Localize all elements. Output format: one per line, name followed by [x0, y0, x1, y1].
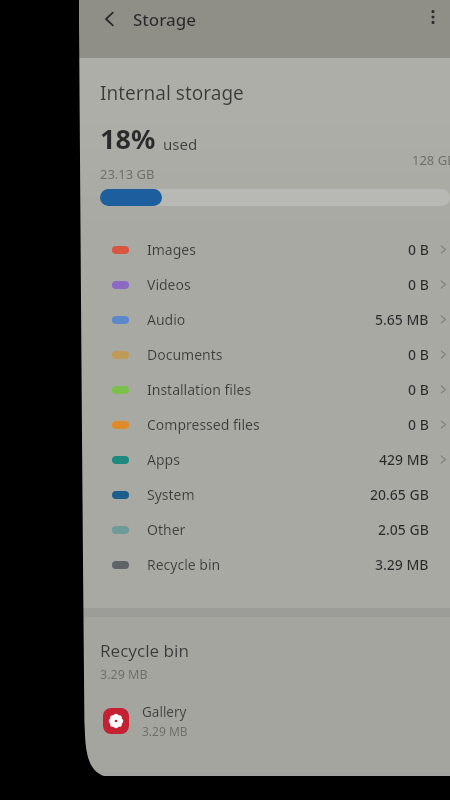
- staticText: 3.29 MB: [100, 666, 148, 683]
- button[interactable]: Recent apps: [79, 772, 202, 800]
- button[interactable]: Other: [79, 512, 450, 547]
- button[interactable]: Audio: [79, 302, 450, 337]
- staticText: Other: [147, 520, 186, 539]
- staticText: 0 B: [408, 415, 429, 434]
- staticText: 0 B: [408, 240, 429, 259]
- button[interactable]: Gallery: [79, 701, 450, 741]
- staticText: Storage: [133, 8, 197, 31]
- staticText: 128 GB: [412, 151, 450, 169]
- staticText: System: [147, 485, 195, 504]
- staticText: 2.05 GB: [378, 520, 429, 539]
- staticText: Compressed files: [147, 415, 260, 434]
- staticText: 0 B: [408, 380, 429, 399]
- staticText: 0 B: [408, 275, 429, 294]
- staticText: Audio: [147, 310, 186, 329]
- staticText: Gallery: [142, 703, 187, 721]
- staticText: Installation files: [147, 380, 252, 399]
- button[interactable]: Compressed files: [79, 407, 450, 442]
- staticText: used: [163, 134, 198, 154]
- button[interactable]: More options: [416, 0, 450, 34]
- staticText: Videos: [147, 275, 191, 294]
- staticText: 18%: [100, 120, 156, 157]
- button[interactable]: System: [79, 477, 450, 512]
- button[interactable]: Installation files: [79, 372, 450, 407]
- staticText: 20.65 GB: [370, 485, 429, 504]
- button[interactable]: Home: [202, 772, 326, 800]
- staticText: Recycle bin: [147, 555, 221, 574]
- staticText: 23.13 GB: [100, 165, 155, 183]
- button[interactable]: Videos: [79, 267, 450, 302]
- staticText: 3.29 MB: [142, 723, 188, 739]
- staticText: Internal storage: [100, 80, 244, 106]
- staticText: 3.29 MB: [375, 555, 429, 574]
- staticText: Recycle bin: [100, 639, 189, 662]
- button[interactable]: Recycle bin: [79, 547, 450, 582]
- staticText: Documents: [147, 345, 223, 364]
- staticText: Images: [147, 240, 196, 259]
- button[interactable]: Documents: [79, 337, 450, 372]
- staticText: Apps: [147, 450, 180, 469]
- staticText: 5.65 MB: [375, 310, 429, 329]
- staticText: 429 MB: [379, 450, 429, 469]
- button[interactable]: Back: [326, 772, 450, 800]
- button[interactable]: Apps: [79, 442, 450, 477]
- staticText: 0 B: [408, 345, 429, 364]
- button[interactable]: Navigate up: [91, 0, 129, 38]
- button[interactable]: Images: [79, 232, 450, 267]
